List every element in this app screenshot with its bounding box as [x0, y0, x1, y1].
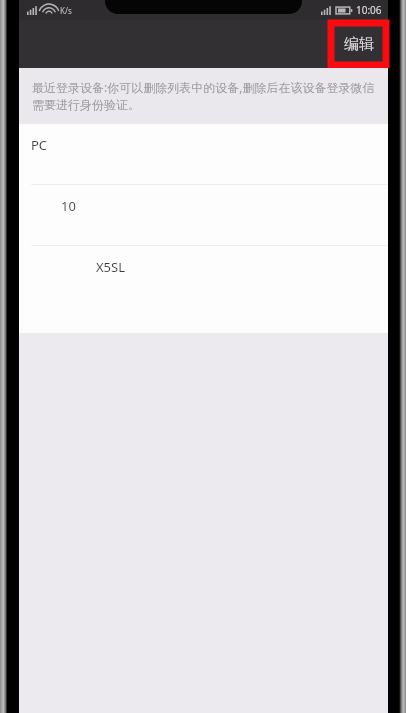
- staticText: PC: [31, 136, 48, 154]
- staticText: K/s: [60, 5, 72, 16]
- staticText: 编辑: [344, 35, 374, 54]
- staticText: 最近登录设备:你可以删除列表中的设备,删除后在该设备登录微信需要进行身份验证。: [32, 79, 375, 113]
- staticText: X5SL: [96, 258, 126, 276]
- staticText: 10:06: [356, 3, 382, 17]
- button[interactable]: X5SL: [19, 246, 388, 306]
- button[interactable]: 编辑: [331, 23, 386, 65]
- button[interactable]: PC: [19, 124, 388, 184]
- staticText: 10: [61, 197, 76, 215]
- button[interactable]: 10: [19, 185, 388, 245]
